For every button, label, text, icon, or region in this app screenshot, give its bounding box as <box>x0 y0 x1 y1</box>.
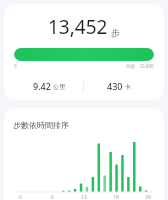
staticText: 步數依時間排序 <box>13 120 69 130</box>
staticText: 目標：10,000 <box>126 63 154 69</box>
staticText: 13,452 <box>48 14 108 40</box>
staticText: 9.42 <box>33 80 51 92</box>
staticText: 步 <box>111 27 120 38</box>
staticText: 0 <box>14 63 17 69</box>
button[interactable]: 步數依時間排序 <box>4 108 164 200</box>
staticText: 卡 <box>125 83 131 91</box>
staticText: 430 <box>107 80 123 92</box>
button[interactable]: Step goal progress <box>14 48 154 61</box>
staticText: 18 <box>113 194 119 200</box>
staticText: 6 <box>51 194 54 200</box>
button[interactable]: 430 <box>84 80 154 92</box>
other: Steps by hour chart <box>13 140 155 192</box>
staticText: 24 <box>145 194 151 200</box>
staticText: 12 <box>81 194 87 200</box>
button[interactable]: 9.42 <box>14 80 83 92</box>
staticText: 0 <box>19 194 22 200</box>
button[interactable]: 13,452 <box>4 4 164 100</box>
staticText: 公里 <box>53 83 65 91</box>
